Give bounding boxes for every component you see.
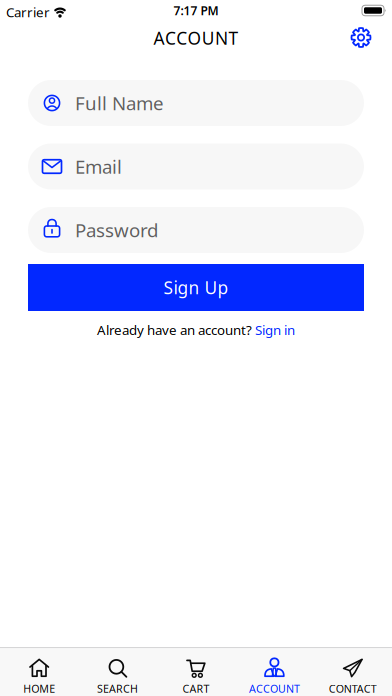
button[interactable]: Password	[28, 207, 364, 253]
button[interactable]: Sign in	[255, 321, 295, 339]
staticText: ACCOUNT	[249, 681, 300, 696]
staticText: 7:17 PM	[173, 2, 218, 18]
button[interactable]: Full Name	[28, 80, 364, 126]
staticText: CONTACT	[329, 681, 377, 696]
staticText: Email	[75, 154, 122, 179]
button[interactable]: SEARCH	[78, 649, 157, 696]
staticText: Sign in	[255, 321, 295, 339]
button[interactable]: Sign Up	[28, 264, 364, 311]
button[interactable]: CONTACT	[314, 649, 392, 696]
staticText: Carrier	[6, 3, 50, 21]
staticText: Password	[75, 218, 158, 242]
button[interactable]: Email	[28, 143, 364, 189]
staticText: HOME	[23, 681, 55, 696]
staticText: ACCOUNT	[154, 26, 238, 49]
button[interactable]	[349, 25, 373, 49]
button[interactable]: ACCOUNT	[235, 649, 314, 696]
button[interactable]: CART	[157, 649, 235, 696]
staticText: Already have an account?	[97, 321, 255, 339]
staticText: SEARCH	[97, 681, 138, 696]
staticText: Sign Up	[163, 276, 228, 299]
staticText: CART	[182, 681, 209, 696]
button[interactable]: HOME	[0, 649, 78, 696]
staticText: Full Name	[75, 91, 164, 115]
